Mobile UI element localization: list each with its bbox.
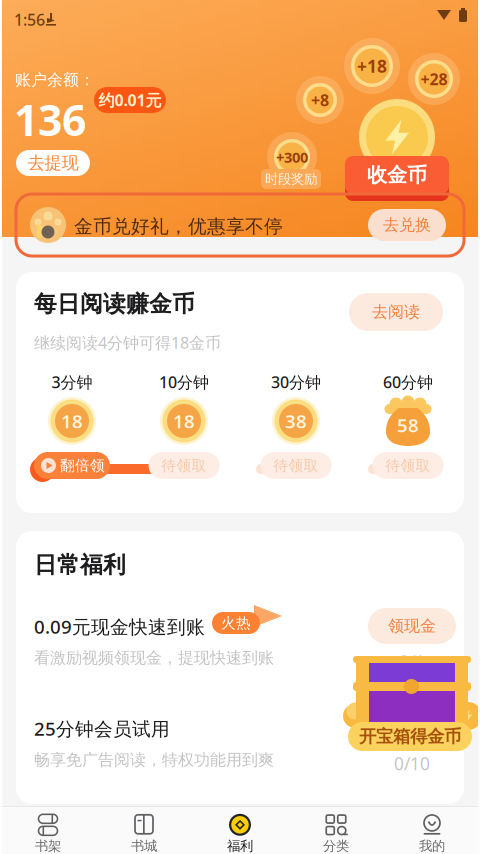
button[interactable]: 书架 [0, 806, 96, 854]
staticText: 0.09元现金快速到账 [34, 614, 205, 639]
button[interactable]: 去阅读 [349, 293, 443, 331]
staticText: 福利 [227, 838, 253, 854]
staticText: 账户余额： [15, 70, 95, 90]
button[interactable]: 金币兑好礼，优惠享不停 [16, 194, 464, 256]
button[interactable]: 开宝箱得金币 [350, 648, 474, 752]
staticText: 看视频 [388, 718, 436, 738]
staticText: 分类 [323, 838, 349, 854]
staticText: 25分钟会员试用 [34, 716, 170, 741]
button[interactable]: 我的 [384, 806, 480, 854]
button[interactable]: 收金币 [345, 99, 449, 207]
staticText: 去阅读 [372, 302, 420, 322]
staticText: 继续阅读4分钟可得18金币 [34, 332, 221, 353]
staticText: 待领取 [273, 456, 318, 474]
staticText: 18 [173, 409, 195, 433]
staticText: 看激励视频领现金，提现快速到账 [34, 648, 274, 668]
staticText: 火热 [221, 614, 251, 632]
staticText: 去提现 [27, 152, 78, 174]
staticText: 金币兑好礼，优惠享不停 [74, 215, 283, 238]
staticText: 我的 [419, 838, 445, 854]
staticText: 136 [14, 91, 86, 148]
staticText: +8 [311, 89, 329, 111]
staticText: 去兑换 [383, 215, 431, 235]
staticText: 书架 [35, 838, 61, 854]
staticText: 翻倍领 [60, 456, 105, 474]
staticText: 1:56 [14, 9, 45, 30]
button[interactable]: 分类 [288, 806, 384, 854]
button[interactable]: 翻倍领 [34, 452, 110, 479]
staticText: 开宝箱得金币 [359, 726, 461, 747]
button[interactable]: 书城 [96, 806, 192, 854]
button[interactable]: 福利 [192, 806, 288, 854]
staticText: 18 [61, 409, 83, 433]
staticText: 日常福利 [34, 551, 126, 579]
staticText: 书城 [131, 838, 157, 854]
staticText: 待领取 [161, 456, 206, 474]
staticText: 收金币 [367, 163, 427, 187]
staticText: 58 [397, 413, 419, 437]
staticText: 30分钟 [271, 371, 321, 393]
button[interactable]: 待领取 [148, 452, 219, 479]
staticText: +28 [420, 68, 447, 90]
staticText: 10分钟 [159, 371, 209, 393]
button[interactable]: 去提现 [16, 150, 90, 176]
staticText: 每日阅读赚金币 [34, 290, 195, 318]
button[interactable]: 领现金 [368, 608, 456, 644]
staticText: 领现金 [388, 616, 436, 636]
staticText: 畅享免广告阅读，特权功能用到爽 [34, 750, 274, 770]
staticText: 时段奖励 [265, 171, 317, 187]
staticText: +18 [357, 54, 387, 77]
staticText: 约0.01元 [98, 89, 161, 111]
button[interactable]: 看视频 [368, 710, 456, 746]
staticText: 0/1 [399, 650, 425, 673]
staticText: +300 [276, 147, 308, 167]
staticText: 0/10 [394, 752, 430, 775]
button[interactable]: 待领取 [372, 452, 443, 479]
button[interactable]: 待领取 [260, 452, 331, 479]
staticText: 38 [285, 409, 307, 433]
staticText: 3分钟 [51, 371, 92, 393]
staticText: 待领取 [385, 456, 430, 474]
staticText: 60分钟 [383, 371, 433, 393]
